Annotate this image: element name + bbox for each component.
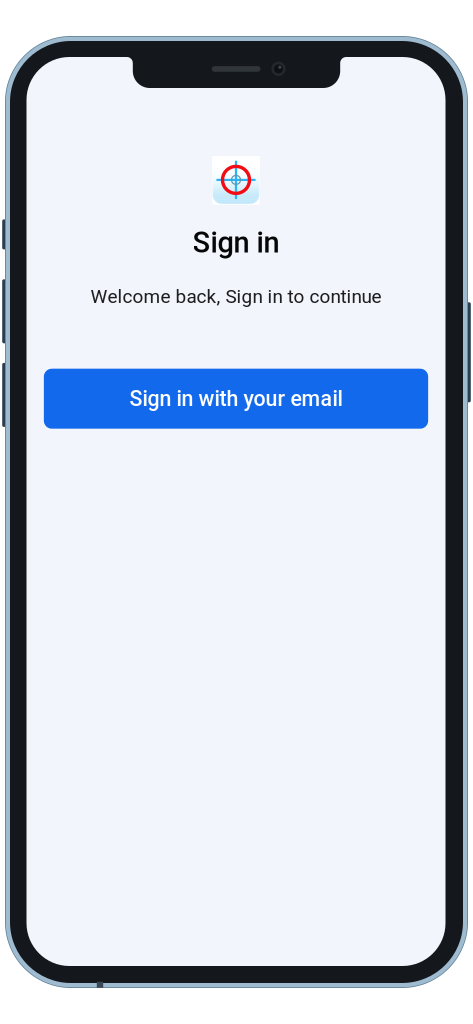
button[interactable]: Sign in with your email bbox=[44, 369, 428, 429]
staticText: Sign in with your email bbox=[129, 386, 342, 411]
staticText: Welcome back, Sign in to continue bbox=[90, 285, 381, 308]
staticText: Sign in bbox=[192, 226, 279, 259]
